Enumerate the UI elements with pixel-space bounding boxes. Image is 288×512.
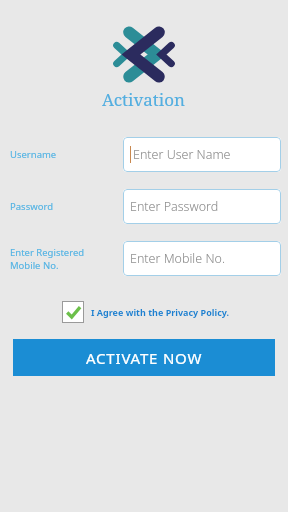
staticText: Enter Registered Mobile No. (10, 246, 85, 272)
staticText: Password (10, 200, 53, 213)
staticText: ACTIVATE NOW (86, 348, 203, 368)
staticText: Username (10, 148, 57, 161)
button[interactable]: ACTIVATE NOW (13, 339, 275, 376)
staticText: Enter Mobile No. (130, 250, 225, 267)
button[interactable]: I Agree with the Privacy Policy. (62, 301, 278, 323)
button[interactable]: Enter Mobile No. (123, 241, 281, 276)
staticText: Enter User Name (133, 146, 231, 163)
button[interactable]: Enter User Name (123, 137, 281, 172)
other: App logo (113, 26, 175, 83)
staticText: I Agree with the Privacy Policy. (91, 306, 230, 318)
button[interactable]: Enter Password (123, 189, 281, 224)
staticText: Activation (102, 88, 186, 111)
staticText: Enter Password (130, 198, 219, 215)
